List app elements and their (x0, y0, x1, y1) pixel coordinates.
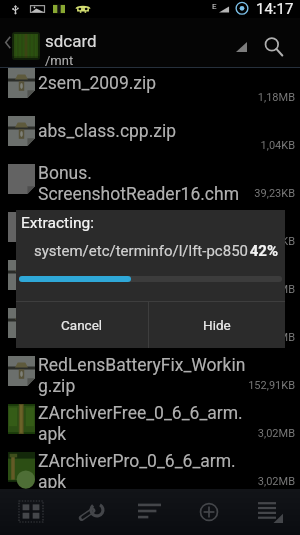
button[interactable]: Tools (61, 489, 119, 535)
button[interactable]: 2sem_2009.zip (0, 59, 300, 107)
button[interactable]: Up (0, 18, 42, 67)
button[interactable]: Bonus. (0, 155, 300, 203)
staticText: 2,11MB (240, 283, 295, 296)
staticText: ZArchiverPro_0_6_6_arm. (38, 451, 236, 472)
staticText: Images_pack.zip (38, 265, 169, 286)
staticText: Music_archive.zip (38, 313, 177, 334)
button[interactable]: View mode (3, 489, 61, 535)
button[interactable]: Sort (228, 18, 258, 67)
staticText: system/etc/terminfo/l/lft-pc850 (34, 242, 248, 260)
staticText: ZArchiverFree_0_6_6_arm. (38, 403, 243, 424)
button[interactable]: Music_archive.zip (0, 299, 300, 347)
button[interactable]: RedLensBatteryFix_Workin (0, 347, 300, 395)
staticText: 39,23KB (240, 187, 295, 200)
staticText: Hide (203, 317, 231, 333)
staticText: 1,18MB (240, 91, 295, 104)
button[interactable]: abs_class.cpp.zip (0, 107, 300, 155)
button[interactable]: ZArchiverFree_0_6_6_arm. (0, 395, 300, 443)
staticText: Cancel (61, 317, 103, 333)
staticText: 1,04KB (240, 139, 295, 152)
staticText: RedLensBatteryFix_Workin (38, 355, 246, 376)
button[interactable]: Bonus. (0, 203, 300, 251)
staticText: /mnt (45, 53, 74, 68)
button[interactable]: Sort (119, 489, 177, 535)
staticText: 42% (218, 242, 278, 260)
staticText: ScreenshotReader16.chm (38, 184, 240, 205)
staticText: ScreenshotReader16.rar (38, 232, 226, 253)
staticText: Extracting: (21, 214, 94, 232)
button[interactable]: ZArchiverPro_0_6_6_arm. (0, 443, 300, 480)
staticText: abs_class.cpp.zip (38, 121, 177, 142)
staticText: E (212, 2, 217, 11)
button[interactable]: Menu (239, 489, 297, 535)
button[interactable]: Images_pack.zip (0, 251, 300, 299)
button[interactable]: Search (258, 18, 300, 67)
staticText: apk (38, 424, 67, 445)
staticText: 3,02MB (240, 427, 295, 440)
staticText: 3,02MB (240, 475, 295, 488)
button[interactable]: Hide (149, 302, 285, 348)
staticText: 22,10KB (240, 235, 295, 248)
staticText: g.zip (38, 376, 76, 397)
button[interactable]: Add (181, 489, 239, 535)
staticText: Bonus. (38, 211, 92, 232)
staticText: 2sem_2009.zip (38, 73, 157, 94)
staticText: 6,47MB (240, 331, 295, 344)
button[interactable]: Cancel (16, 302, 148, 348)
staticText: 152,91KB (240, 379, 295, 392)
staticText: 14:17 (256, 0, 294, 18)
staticText: sdcard (45, 31, 97, 51)
staticText: Bonus. (38, 163, 92, 184)
staticText: apk (38, 472, 67, 488)
